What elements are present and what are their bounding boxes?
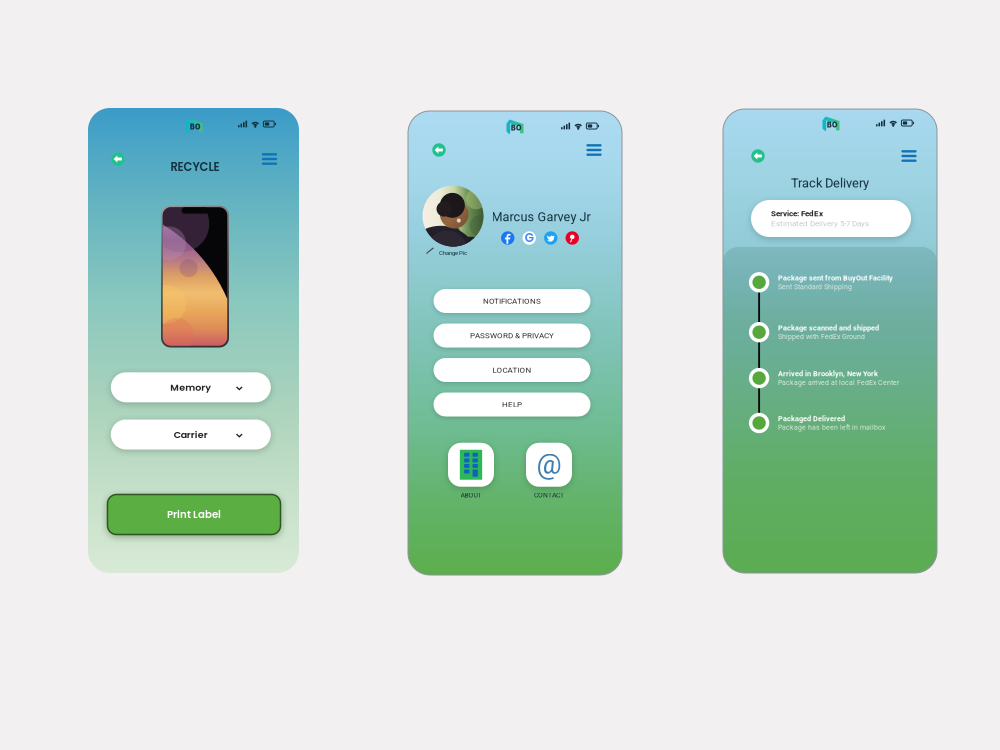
button[interactable]: Back [749,147,767,165]
staticText: BO [827,121,837,129]
button[interactable]: Twitter [543,230,558,245]
button[interactable]: Menu [259,150,279,168]
staticText: BO [190,123,200,131]
staticText: CONTACT [534,491,564,499]
button[interactable]: Carrier [111,419,271,449]
button[interactable]: @ [526,443,572,499]
button[interactable]: PASSWORD & PRIVACY [433,323,590,347]
staticText: RECYCLE [170,159,219,175]
staticText: Service: FedEx [771,209,823,218]
button[interactable]: Back [109,150,127,168]
staticText: Carrier [174,428,208,441]
button[interactable]: HELP [433,392,590,416]
button[interactable]: Menu [584,141,604,159]
staticText: Package scanned and shipped [778,324,879,332]
staticText: HELP [502,400,522,409]
button[interactable]: Menu [899,147,919,165]
button[interactable]: Google [522,230,537,245]
button[interactable]: ABOUT [448,443,494,499]
staticText: NOTIFICATIONS [483,296,541,306]
staticText: Marcus Garvey Jr [491,210,590,224]
staticText: @ [536,448,561,481]
button[interactable]: Facebook [500,230,515,245]
staticText: Package arrived at local FedEx Center [778,378,899,387]
button[interactable]: NOTIFICATIONS [433,289,590,313]
staticText: Package has been left in mailbox [778,423,885,431]
staticText: Packaged Delivered [778,414,845,423]
staticText: Sent Standard Shipping [778,283,852,291]
button[interactable]: Print Label [107,494,280,534]
button[interactable]: LOCATION [433,358,590,382]
button[interactable]: Pinterest [565,230,580,245]
staticText: BO [511,124,521,132]
staticText: LOCATION [492,365,531,375]
staticText: Track Delivery [791,175,869,190]
staticText: Arrived in Brooklyn, New York [778,369,878,378]
staticText: PASSWORD & PRIVACY [470,331,554,340]
staticText: Shipped with FedEx Ground [778,333,865,341]
button[interactable]: Memory [111,372,271,402]
staticText: G [525,229,534,246]
staticText: Estimated Delivery 5-7 Days [771,219,869,228]
button[interactable]: Back [430,141,448,159]
staticText: Change Pic [439,249,467,256]
staticText: Package sent from BuyOut Facility [778,274,893,282]
staticText: Print Label [167,507,221,522]
staticText: ABOUT [460,491,481,499]
staticText: Memory [170,381,211,394]
